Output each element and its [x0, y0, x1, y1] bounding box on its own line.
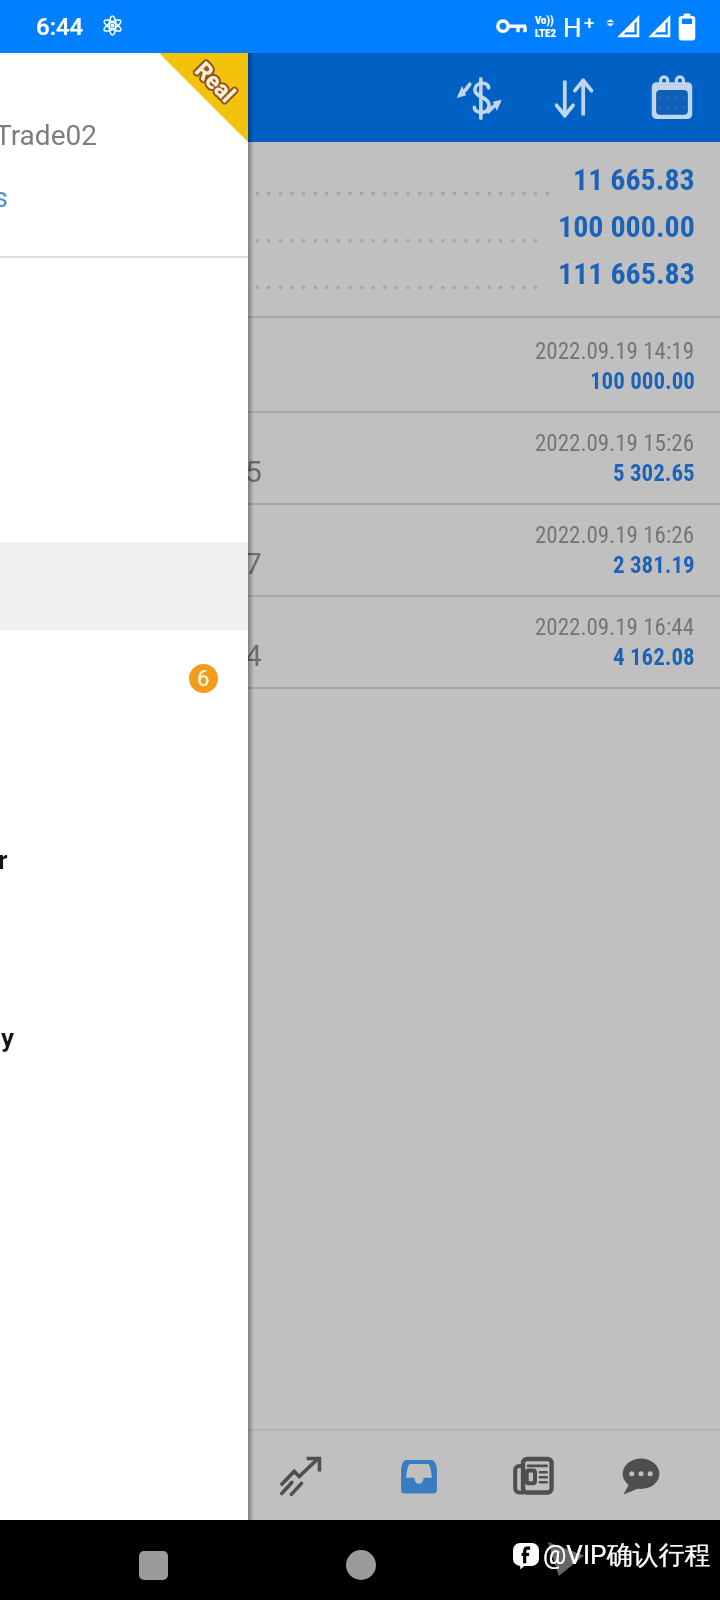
- staticText: Real: [189, 55, 241, 106]
- staticText: 2022.09.19 16:26: [535, 522, 695, 549]
- staticText: 111 665.83: [558, 256, 695, 291]
- staticText: 100 000.00: [558, 209, 695, 244]
- button[interactable]: Sort: [529, 53, 618, 142]
- staticText: Real: [190, 55, 242, 106]
- button[interactable]: 5: [0, 413, 720, 503]
- staticText: Real: [190, 58, 242, 109]
- button[interactable]: News: [479, 1431, 591, 1520]
- staticText: 6:44: [36, 13, 84, 41]
- staticText: 2 381.19: [613, 552, 695, 579]
- staticText: Real: [189, 58, 241, 109]
- button[interactable]: Deposit funds: [434, 53, 523, 142]
- staticText: Trade02: [0, 119, 97, 152]
- staticText: 5 302.65: [613, 460, 695, 487]
- staticText: Real: [189, 57, 241, 108]
- button[interactable]: Quotes: [246, 1431, 358, 1520]
- button[interactable]: Chat: [585, 1431, 697, 1520]
- staticText: Real: [188, 57, 240, 108]
- staticText: Real: [188, 58, 240, 109]
- button[interactable]: 7: [0, 505, 720, 595]
- button[interactable]: Trade: [363, 1431, 475, 1520]
- staticText: 2022.09.19 16:44: [535, 614, 695, 641]
- staticText: 4: [245, 638, 262, 673]
- button[interactable]: 4: [0, 597, 720, 687]
- button[interactable]: 2022.09.19 14:19: [0, 318, 720, 411]
- staticText: LTE2: [535, 27, 557, 40]
- staticText: Real: [187, 58, 239, 109]
- button[interactable]: Select period: [627, 53, 716, 142]
- staticText: Real: [188, 55, 240, 106]
- button[interactable]: 6: [189, 664, 218, 693]
- staticText: Real: [188, 59, 240, 110]
- staticText: 7: [245, 546, 262, 581]
- button[interactable]: 111 665.83: [0, 250, 720, 297]
- staticText: Real: [191, 58, 243, 109]
- staticText: Real: [188, 56, 240, 107]
- staticText: 5: [245, 454, 262, 489]
- staticText: H: [563, 13, 582, 43]
- staticText: 4 162.08: [613, 644, 695, 671]
- button[interactable]: 11 665.83: [0, 156, 720, 203]
- staticText: Real: [187, 56, 239, 107]
- staticText: +: [584, 12, 595, 34]
- button[interactable]: 100 000.00: [0, 203, 720, 250]
- staticText: Real: [191, 57, 243, 108]
- staticText: @VIP确认行程: [543, 1539, 711, 1572]
- staticText: r: [0, 845, 8, 875]
- button[interactable]: Recent apps: [139, 1551, 168, 1580]
- staticText: Real: [189, 59, 241, 110]
- staticText: s: [0, 182, 8, 214]
- staticText: Real: [190, 59, 242, 110]
- staticText: y: [1, 1023, 15, 1053]
- staticText: Real: [187, 57, 239, 108]
- staticText: 11 665.83: [573, 162, 695, 197]
- staticText: 100 000.00: [590, 368, 695, 395]
- staticText: Real: [190, 56, 242, 107]
- staticText: Real: [189, 56, 241, 107]
- button[interactable]: Home: [346, 1550, 376, 1580]
- staticText: 6: [197, 666, 210, 692]
- staticText: Real: [191, 56, 243, 107]
- staticText: 2022.09.19 15:26: [535, 430, 695, 457]
- staticText: Real: [190, 57, 242, 108]
- staticText: 2022.09.19 14:19: [535, 338, 695, 365]
- staticText: Vo)): [535, 14, 554, 27]
